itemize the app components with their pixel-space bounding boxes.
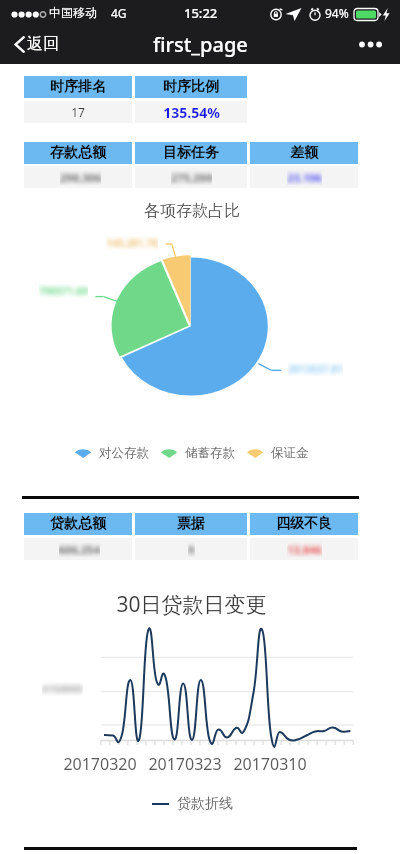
staticText: 四级不良 <box>276 515 332 533</box>
staticText: 中国移动 <box>49 5 97 20</box>
button[interactable] <box>24 166 132 188</box>
button[interactable] <box>250 538 358 560</box>
staticText: 20170323 <box>148 753 222 773</box>
staticText: 4G <box>111 5 127 21</box>
staticText: 17 <box>71 104 85 120</box>
staticText: 对公存款 <box>99 445 149 461</box>
staticText: 返回 <box>27 34 59 54</box>
staticText: first_page <box>153 31 248 58</box>
staticText: 差额 <box>290 144 318 162</box>
staticText: 目标任务 <box>163 144 219 162</box>
button[interactable]: 保证金 <box>247 445 309 461</box>
staticText: 各项存款占比 <box>0 201 384 221</box>
button[interactable]: 目标任务 <box>135 142 247 164</box>
staticText: 30日贷款日变更 <box>0 590 383 619</box>
button[interactable]: 对公存款 <box>75 445 149 461</box>
button[interactable]: More options <box>348 24 400 64</box>
button[interactable] <box>135 166 247 188</box>
staticText: 2013537.81 <box>288 362 343 376</box>
staticText: 票据 <box>177 515 205 533</box>
button[interactable]: 四级不良 <box>250 513 358 535</box>
staticText: 23,106 <box>287 170 322 185</box>
button[interactable]: 差额 <box>250 142 358 164</box>
staticText: 135.54% <box>163 103 220 122</box>
button[interactable] <box>250 166 358 188</box>
staticText: 20170320 <box>63 753 137 773</box>
staticText: 94% <box>325 5 349 21</box>
button[interactable] <box>135 538 247 560</box>
staticText: 606,254 <box>59 542 100 557</box>
staticText: 储蓄存款 <box>185 445 235 461</box>
staticText: 贷款折线 <box>177 795 233 813</box>
button[interactable]: 票据 <box>135 513 247 535</box>
staticText: 20170310 <box>233 753 307 773</box>
staticText: 6150000 <box>42 682 83 696</box>
staticText: 15:22 <box>184 4 218 22</box>
button[interactable]: 时序排名 <box>24 76 132 98</box>
staticText: 存款总额 <box>50 144 106 162</box>
button[interactable] <box>24 538 132 560</box>
staticText: 140,281.78 <box>106 236 158 250</box>
staticText: 298,306 <box>60 170 101 185</box>
staticText: 13,846 <box>287 542 322 557</box>
staticText: 798571.60 <box>39 284 88 298</box>
staticText: 275,200 <box>171 170 212 185</box>
staticText: 保证金 <box>271 445 309 461</box>
button[interactable]: 返回 <box>0 34 69 54</box>
button[interactable]: 储蓄存款 <box>161 445 235 461</box>
button[interactable]: 17 <box>24 101 132 123</box>
button[interactable]: 贷款总额 <box>24 513 132 535</box>
button[interactable]: 时序比例 <box>135 76 247 98</box>
staticText: 0 <box>188 542 195 557</box>
staticText: 贷款总额 <box>50 515 106 533</box>
button[interactable]: 135.54% <box>135 101 247 123</box>
staticText: 时序比例 <box>163 78 219 96</box>
staticText: 时序排名 <box>50 78 106 96</box>
button[interactable]: 贷款折线 <box>152 795 233 813</box>
button[interactable]: 存款总额 <box>24 142 132 164</box>
